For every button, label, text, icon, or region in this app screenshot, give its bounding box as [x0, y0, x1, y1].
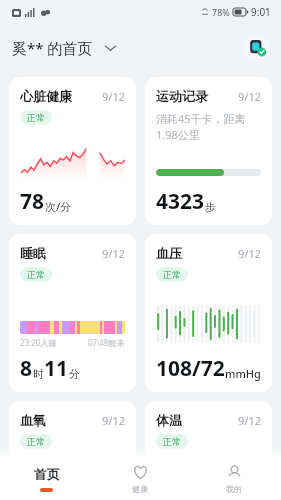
staticText: 首页	[34, 466, 60, 482]
button[interactable]: 奚** 的首页	[12, 38, 116, 58]
staticText: 9:01	[251, 5, 271, 19]
staticText: 9/12	[102, 89, 125, 104]
staticText: 9/12	[102, 246, 125, 261]
button[interactable]: My device	[243, 34, 271, 62]
staticText: 健康	[132, 484, 148, 494]
button[interactable]: 我的	[187, 458, 281, 500]
staticText: 时	[33, 367, 44, 381]
staticText: 78	[20, 187, 45, 216]
staticText: 108/72	[156, 354, 225, 383]
button[interactable]: 健康	[93, 458, 187, 500]
staticText: 消耗45千卡，距离 1.98公里	[156, 111, 246, 142]
staticText: 步	[205, 200, 216, 214]
staticText: 奚** 的首页	[12, 38, 93, 58]
staticText: 4323	[156, 187, 205, 216]
staticText: 次/分	[45, 199, 72, 214]
staticText: 正常	[27, 269, 45, 280]
staticText: 23:20入睡	[20, 337, 57, 348]
staticText: 正常	[163, 269, 181, 280]
staticText: 正常	[27, 436, 45, 447]
button[interactable]: 睡眠	[9, 234, 136, 392]
staticText: 体温	[156, 412, 182, 428]
staticText: mmHg	[225, 366, 261, 381]
button[interactable]: 首页	[0, 458, 93, 500]
staticText: 78%	[212, 6, 230, 18]
staticText: 9/12	[238, 413, 261, 428]
staticText: 心脏健康	[20, 88, 72, 104]
button[interactable]: 血压	[145, 234, 272, 392]
button[interactable]: 体温	[145, 401, 272, 491]
button[interactable]: 运动记录	[145, 77, 272, 225]
staticText: 9/12	[238, 246, 261, 261]
staticText: 9/12	[238, 89, 261, 104]
staticText: 分	[69, 367, 80, 381]
staticText: 睡眠	[20, 245, 46, 261]
staticText: 11	[44, 354, 69, 383]
staticText: 9/12	[102, 413, 125, 428]
button[interactable]: 血氧	[9, 401, 136, 491]
staticText: 正常	[27, 112, 45, 123]
staticText: 血压	[156, 245, 182, 261]
button[interactable]: 心脏健康	[9, 77, 136, 225]
staticText: 我的	[226, 484, 242, 494]
staticText: 运动记录	[156, 88, 208, 104]
staticText: 血氧	[20, 412, 46, 428]
staticText: 07:48醒来	[88, 337, 125, 348]
staticText: 正常	[163, 436, 181, 447]
staticText: 8	[20, 354, 33, 383]
